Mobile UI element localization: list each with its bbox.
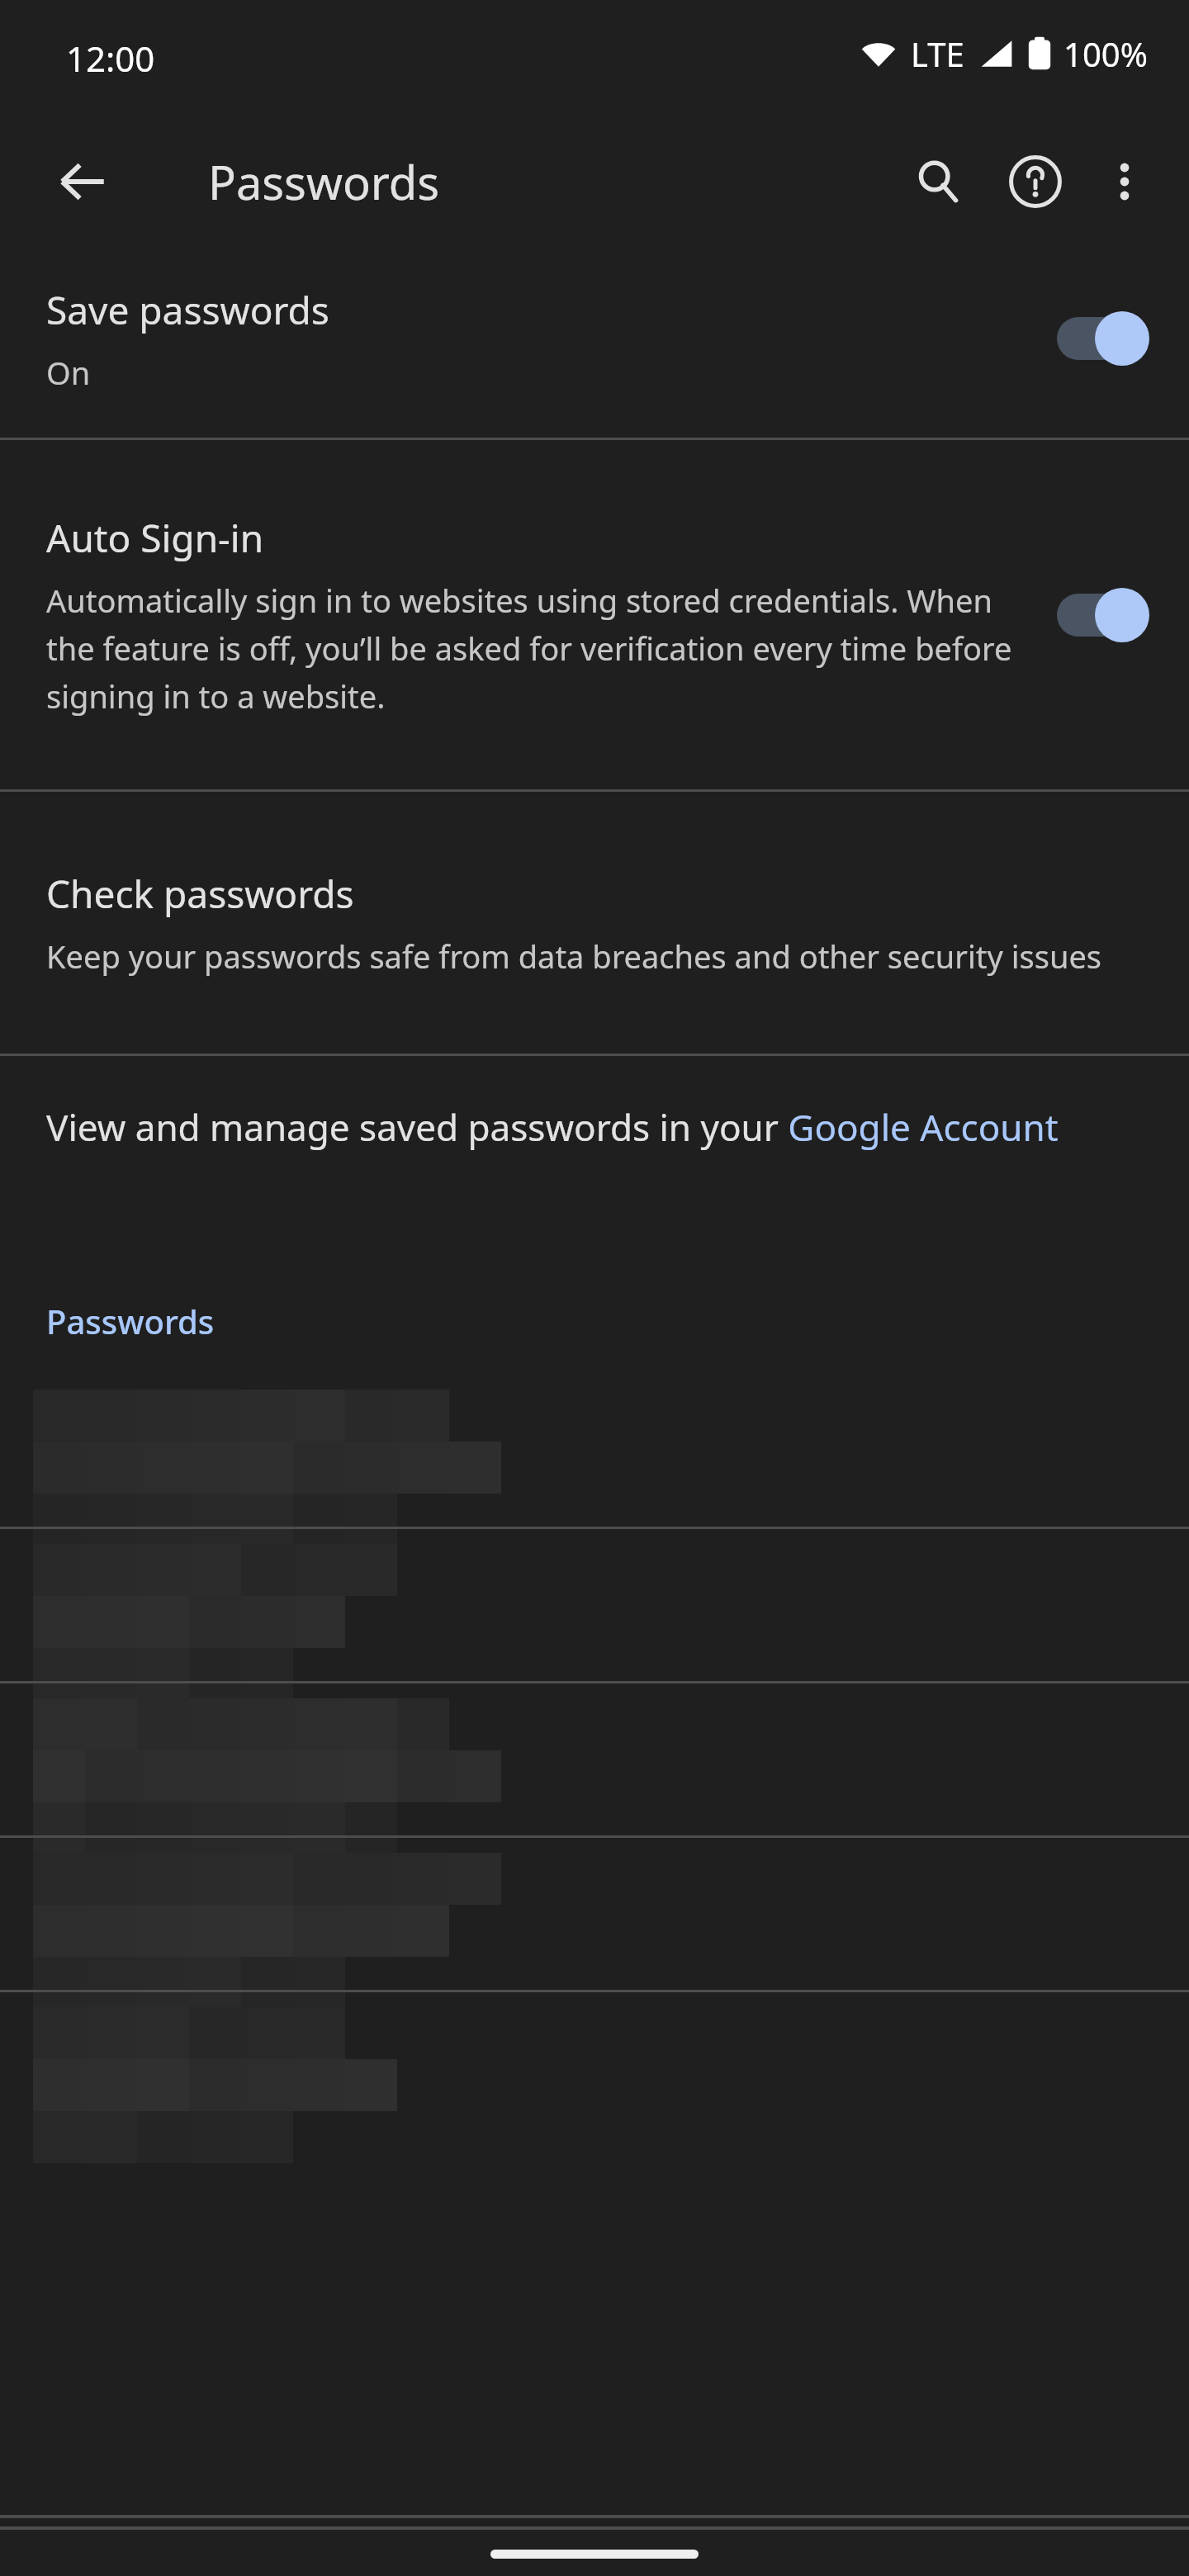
staticText: Check passwords (46, 868, 354, 920)
staticText: Passwords (208, 150, 440, 213)
button[interactable]: Save passwords (0, 239, 1189, 438)
button[interactable]: Help (992, 139, 1078, 225)
staticText: 100% (1063, 31, 1148, 76)
staticText: View and manage saved passwords in your … (46, 1102, 1059, 1152)
staticText: Auto Sign-in (46, 512, 264, 564)
button[interactable]: Saved password entry (0, 1683, 1189, 1835)
staticText: Passwords (46, 1299, 215, 1343)
button[interactable]: Back (43, 142, 122, 221)
button[interactable]: Saved password entry (0, 1838, 1189, 1990)
button[interactable]: Search (895, 139, 981, 225)
button[interactable]: More options (1082, 139, 1168, 225)
button[interactable]: Toggle setting (1055, 586, 1151, 644)
button[interactable]: Saved password entry (0, 1375, 1189, 1527)
staticText: Save passwords (46, 284, 329, 336)
button[interactable]: Auto Sign-in (0, 440, 1189, 789)
button[interactable]: View and manage saved passwords in your … (0, 1056, 1189, 1267)
button[interactable]: Saved password entry (0, 1529, 1189, 1681)
staticText: 12:00 (66, 35, 155, 82)
staticText: Automatically sign in to websites using … (46, 579, 1030, 717)
button[interactable]: Saved password entry (0, 1992, 1189, 2144)
staticText: LTE (911, 31, 964, 76)
staticText: Keep your passwords safe from data breac… (46, 935, 1102, 978)
button[interactable]: Toggle setting (1055, 310, 1151, 367)
staticText: On (46, 351, 91, 394)
button[interactable]: Check passwords (0, 792, 1189, 1054)
